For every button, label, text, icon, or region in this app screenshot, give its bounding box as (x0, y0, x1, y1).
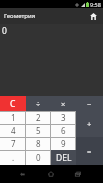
staticText: 6 (61, 125, 66, 136)
button[interactable]: 7 (0, 137, 26, 150)
staticText: − (87, 99, 92, 109)
staticText: 0 (2, 25, 7, 37)
button[interactable]: Back (16, 167, 30, 181)
button[interactable]: Home (44, 167, 58, 181)
staticText: 1 (11, 112, 16, 123)
button[interactable]: Home (89, 12, 98, 21)
button[interactable]: + (76, 111, 103, 137)
button[interactable]: 0 (26, 150, 51, 165)
button[interactable]: = (76, 137, 103, 165)
staticText: 7 (11, 138, 16, 149)
button[interactable]: C (0, 96, 26, 111)
staticText: 4 (11, 125, 16, 136)
button[interactable]: 4 (0, 124, 26, 137)
staticText: Геометрия (4, 12, 36, 20)
staticText: = (87, 146, 92, 156)
staticText: + (87, 119, 92, 129)
staticText: 0 (36, 152, 41, 163)
button[interactable]: 8 (26, 137, 51, 150)
staticText: ÷ (36, 99, 41, 109)
button[interactable]: ÷ (26, 96, 51, 111)
button[interactable]: DEL (51, 150, 76, 165)
button[interactable]: × (51, 96, 76, 111)
staticText: DEL (56, 152, 72, 164)
staticText: 2 (36, 112, 41, 123)
button[interactable]: 2 (26, 111, 51, 124)
button[interactable]: − (76, 96, 103, 111)
button[interactable]: 1 (0, 111, 26, 124)
staticText: 9:58 (90, 1, 101, 8)
button[interactable]: 3 (51, 111, 76, 124)
staticText: 5 (36, 125, 41, 136)
button[interactable]: 6 (51, 124, 76, 137)
button[interactable]: Recents (71, 167, 85, 181)
button[interactable]: . (0, 150, 26, 165)
button[interactable]: 9 (51, 137, 76, 150)
button[interactable]: 5 (26, 124, 51, 137)
staticText: C (10, 98, 16, 110)
staticText: 3 (61, 112, 66, 123)
staticText: × (61, 99, 66, 109)
staticText: 9 (61, 138, 66, 149)
staticText: . (12, 152, 15, 163)
staticText: 8 (36, 138, 41, 149)
